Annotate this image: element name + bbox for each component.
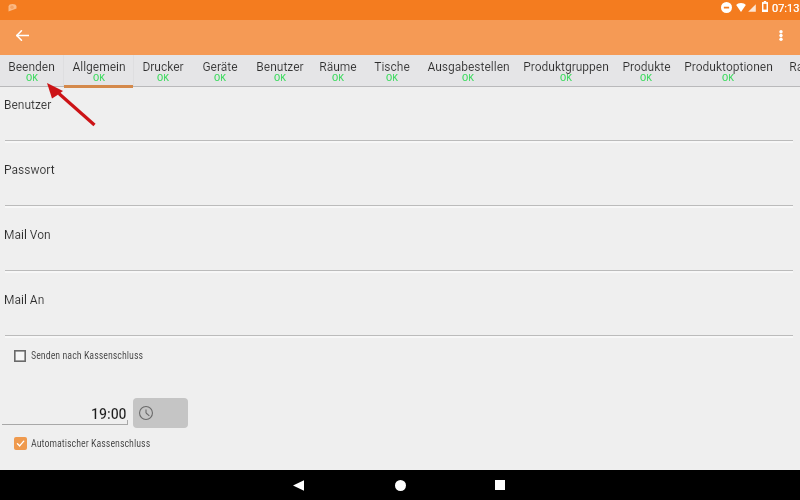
staticText: Geräte <box>202 60 238 74</box>
staticText: OK <box>722 73 734 84</box>
staticText: 19:00 <box>91 406 127 422</box>
button[interactable]: Allgemein <box>64 55 133 88</box>
button[interactable]: Drucker <box>133 55 192 88</box>
staticText: Benutzer <box>4 98 52 112</box>
staticText: OK <box>93 73 105 84</box>
button[interactable]: Benutzer <box>0 98 800 118</box>
button[interactable]: Recent apps <box>480 470 520 500</box>
button[interactable]: Pick time <box>133 398 188 428</box>
staticText: Ausgabestellen <box>427 60 510 74</box>
staticText: Tische <box>374 60 410 74</box>
button[interactable]: Produktgruppen <box>516 55 615 88</box>
button[interactable]: Produkte <box>615 55 677 88</box>
button[interactable]: Senden nach Kassenschluss <box>14 350 144 362</box>
button[interactable]: Mail Von <box>0 228 800 248</box>
button[interactable]: Mail An <box>0 293 800 313</box>
button[interactable]: Navigate back <box>5 18 39 52</box>
button[interactable]: Benutzer <box>248 55 312 88</box>
staticText: Mail An <box>4 293 45 307</box>
staticText: Rabatte <box>789 60 800 74</box>
staticText: 07:13 <box>772 2 800 15</box>
staticText: OK <box>26 73 38 84</box>
staticText: OK <box>386 73 398 84</box>
staticText: Räume <box>319 60 357 74</box>
button[interactable]: Produktoptionen <box>677 55 779 88</box>
button[interactable]: Ausgabestellen <box>420 55 516 88</box>
staticText: Allgemein <box>72 60 126 74</box>
staticText: OK <box>274 73 286 84</box>
staticText: Beenden <box>8 60 55 74</box>
staticText: Produktoptionen <box>684 60 773 74</box>
button[interactable]: More options <box>765 19 797 51</box>
staticText: OK <box>560 73 572 84</box>
staticText: Produktgruppen <box>523 60 609 74</box>
button[interactable]: Räume <box>312 55 364 88</box>
staticText: OK <box>214 73 226 84</box>
staticText: OK <box>462 73 474 84</box>
staticText: Drucker <box>142 60 184 74</box>
staticText: Produkte <box>622 60 671 74</box>
button[interactable]: Geräte <box>192 55 248 88</box>
button[interactable]: Automatischer Kassenschluss <box>14 437 151 450</box>
staticText: OK <box>640 73 652 84</box>
button[interactable]: Passwort <box>0 163 800 183</box>
staticText: OK <box>157 73 169 84</box>
staticText: Benutzer <box>256 60 304 74</box>
staticText: Senden nach Kassenschluss <box>31 350 144 362</box>
staticText: OK <box>332 73 344 84</box>
staticText: Automatischer Kassenschluss <box>31 438 151 450</box>
button[interactable]: Rabatte <box>779 55 800 88</box>
button[interactable]: Beenden <box>0 55 63 88</box>
button[interactable]: Tische <box>364 55 420 88</box>
staticText: Mail Von <box>4 228 51 242</box>
button[interactable]: Home <box>380 470 420 500</box>
staticText: Passwort <box>4 163 55 177</box>
button[interactable]: Back <box>278 470 318 500</box>
